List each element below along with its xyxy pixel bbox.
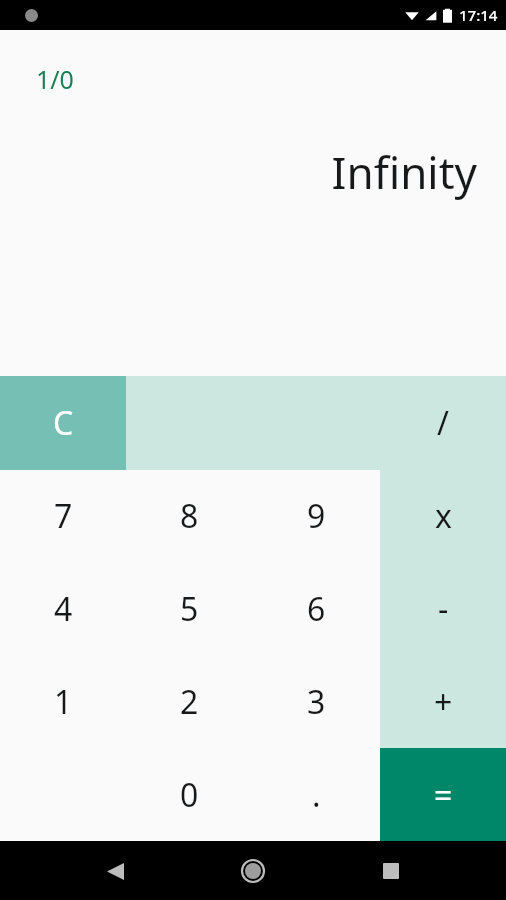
button[interactable]: 4 xyxy=(0,562,126,655)
button[interactable]: 7 xyxy=(0,470,126,562)
staticText: 0 xyxy=(180,773,199,817)
button[interactable]: 0 xyxy=(126,748,253,841)
button[interactable]: 3 xyxy=(253,655,380,748)
staticText: 3 xyxy=(307,680,326,724)
staticText: 17:14 xyxy=(459,5,498,25)
staticText: 1 xyxy=(54,680,73,724)
staticText: C xyxy=(53,401,74,445)
staticText: 6 xyxy=(307,587,326,631)
staticText: 8 xyxy=(180,494,199,538)
button[interactable]: C xyxy=(0,376,126,470)
button[interactable]: / xyxy=(380,376,506,470)
staticText: . xyxy=(312,773,321,817)
button[interactable]: = xyxy=(380,748,506,841)
button[interactable]: 9 xyxy=(253,470,380,562)
staticText: - xyxy=(438,587,449,631)
staticText: 5 xyxy=(180,587,199,631)
staticText: = xyxy=(434,773,453,817)
staticText: 7 xyxy=(54,494,73,538)
button[interactable]: Recent apps xyxy=(371,851,411,891)
staticText: Infinity xyxy=(331,142,477,202)
staticText: + xyxy=(434,680,453,724)
staticText: 9 xyxy=(307,494,326,538)
button[interactable]: - xyxy=(380,562,506,655)
button[interactable]: 1 xyxy=(0,655,126,748)
button[interactable]: 2 xyxy=(126,655,253,748)
staticText: x xyxy=(435,494,452,538)
button[interactable]: x xyxy=(380,470,506,562)
button[interactable]: . xyxy=(253,748,380,841)
button[interactable]: 6 xyxy=(253,562,380,655)
button[interactable]: Home xyxy=(231,849,275,893)
staticText: 2 xyxy=(180,680,199,724)
button[interactable]: 5 xyxy=(126,562,253,655)
staticText: 4 xyxy=(54,587,73,631)
button[interactable]: 8 xyxy=(126,470,253,562)
staticText: 1/0 xyxy=(36,62,74,96)
button[interactable]: Back xyxy=(95,851,135,891)
staticText: / xyxy=(437,401,449,445)
button[interactable]: + xyxy=(380,655,506,748)
